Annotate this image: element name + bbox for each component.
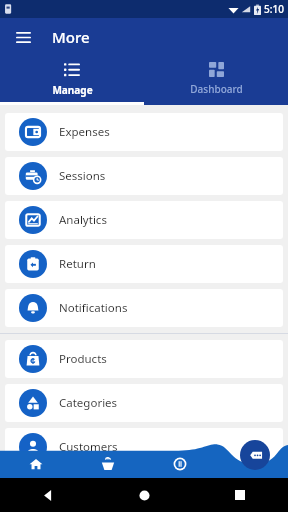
button[interactable]: Return (5, 245, 283, 283)
staticText: Products (59, 351, 107, 367)
staticText: Expenses (59, 124, 110, 140)
button[interactable]: Orders (72, 449, 144, 478)
button[interactable]: Home (96, 478, 192, 512)
button[interactable]: Customers (5, 428, 283, 466)
staticText: Return (59, 256, 96, 272)
staticText: Dashboard (190, 82, 243, 96)
staticText: Notifications (59, 300, 128, 316)
button[interactable]: Open chat (240, 440, 270, 470)
button[interactable]: Analytics (5, 201, 283, 239)
staticText: Sessions (59, 168, 106, 184)
staticText: Manage (52, 83, 93, 97)
staticText: More (52, 27, 90, 47)
button[interactable]: Expenses (5, 113, 283, 151)
button[interactable]: Categories (5, 384, 283, 422)
button[interactable]: Recent apps (192, 478, 288, 512)
button[interactable]: Dashboard (144, 55, 288, 105)
button[interactable]: Hold (144, 449, 216, 478)
staticText: 5:10 (264, 2, 284, 16)
button[interactable]: Back (0, 478, 96, 512)
button[interactable]: Home (0, 449, 72, 478)
button[interactable]: Notifications (5, 289, 283, 327)
button[interactable]: Manage (0, 55, 144, 105)
button[interactable]: Sessions (5, 157, 283, 195)
button[interactable]: Products (5, 340, 283, 378)
staticText: Analytics (59, 212, 107, 228)
staticText: Customers (59, 439, 118, 455)
staticText: Categories (59, 395, 118, 411)
button[interactable]: Open navigation menu (8, 22, 38, 52)
